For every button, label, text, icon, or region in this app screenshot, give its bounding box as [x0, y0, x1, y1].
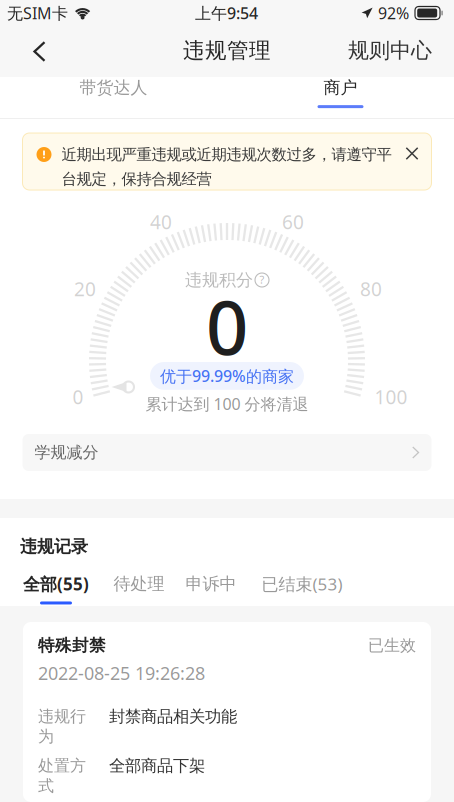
staticText: 学规减分 [34, 442, 98, 463]
staticText: 违规管理 [183, 37, 271, 64]
staticText: 近期出现严重违规或近期违规次数过多，请遵守平 [61, 145, 391, 164]
staticText: 已结束(53) [261, 572, 342, 595]
staticText: 全部商品下架 [109, 756, 205, 776]
staticText: 20 [74, 276, 96, 302]
staticText: 100 [374, 384, 407, 410]
staticText: 80 [360, 276, 382, 302]
button[interactable]: 规则中心 [334, 26, 454, 77]
button[interactable]: 带货达人 [0, 77, 227, 118]
staticText: 商户 [323, 77, 357, 98]
staticText: 累计达到 100 分将清退 [145, 393, 308, 415]
button[interactable]: 待处理 [112, 573, 166, 603]
staticText: 台规定，保持合规经营 [61, 169, 211, 189]
staticText: 0 [72, 384, 83, 410]
staticText: 特殊封禁 [38, 635, 106, 656]
staticText: 0 [206, 276, 248, 376]
staticText: 上午9:54 [195, 2, 258, 24]
staticText: 违规积分 [185, 269, 253, 291]
button[interactable]: 特殊封禁 [23, 622, 431, 802]
staticText: 违规记录 [20, 536, 88, 557]
staticText: 违规行为 [38, 706, 86, 747]
button[interactable]: Back [0, 26, 64, 77]
button[interactable]: 商户 [227, 77, 454, 118]
staticText: 60 [282, 209, 304, 235]
staticText: 封禁商品相关功能 [109, 706, 237, 727]
staticText: 2022-08-25 19:26:28 [38, 661, 205, 685]
staticText: 待处理 [113, 573, 164, 595]
button[interactable]: 申诉中 [184, 573, 238, 603]
staticText: 处置方式 [38, 756, 86, 796]
button[interactable]: 全部(55) [20, 573, 92, 603]
button[interactable]: Dismiss [405, 145, 418, 158]
staticText: ? [259, 272, 264, 287]
staticText: 92% [378, 2, 409, 24]
staticText: 优于99.99%的商家 [160, 365, 294, 387]
staticText: 40 [150, 209, 172, 235]
button[interactable]: 学规减分 [22, 434, 431, 471]
staticText: 规则中心 [348, 37, 432, 64]
button[interactable]: 已结束(53) [256, 573, 348, 603]
staticText: 申诉中 [185, 573, 236, 595]
staticText: 带货达人 [79, 77, 147, 98]
staticText: 无SIM卡 [7, 2, 68, 24]
staticText: 已生效 [368, 635, 416, 655]
staticText: 全部(55) [23, 572, 89, 595]
